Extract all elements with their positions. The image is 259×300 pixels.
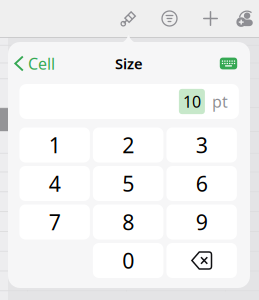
button[interactable]: Cell <box>14 48 66 78</box>
button[interactable]: Format <box>108 0 149 37</box>
button[interactable]: 9 <box>166 204 237 239</box>
staticText: pt <box>212 91 228 112</box>
button[interactable]: Collaborate <box>231 0 259 37</box>
staticText: 2 <box>122 131 134 159</box>
staticText: 8 <box>122 208 134 236</box>
staticText: 9 <box>196 208 208 236</box>
staticText: Size <box>115 54 143 73</box>
button[interactable]: Text options <box>149 0 190 37</box>
staticText: 6 <box>196 169 208 198</box>
staticText: 1 <box>49 131 61 159</box>
staticText: 7 <box>49 208 61 236</box>
button[interactable]: 8 <box>93 204 163 239</box>
button[interactable]: 5 <box>93 166 163 201</box>
button[interactable]: 4 <box>19 166 90 201</box>
button[interactable]: 1 <box>19 127 90 162</box>
button[interactable]: Insert <box>190 0 231 37</box>
staticText: 0 <box>122 246 134 275</box>
button[interactable]: Hide keyboard <box>213 48 243 78</box>
button[interactable]: 2 <box>93 127 163 162</box>
button[interactable]: Delete <box>166 243 237 278</box>
button[interactable]: 3 <box>166 127 237 162</box>
staticText: Cell <box>28 53 55 74</box>
button[interactable]: 6 <box>166 166 237 201</box>
staticText: 4 <box>49 169 61 198</box>
staticText: 10 <box>183 91 201 112</box>
staticText: 5 <box>122 169 134 198</box>
staticText: 3 <box>196 131 208 159</box>
button[interactable]: 0 <box>93 243 163 278</box>
button[interactable]: 7 <box>19 204 90 239</box>
